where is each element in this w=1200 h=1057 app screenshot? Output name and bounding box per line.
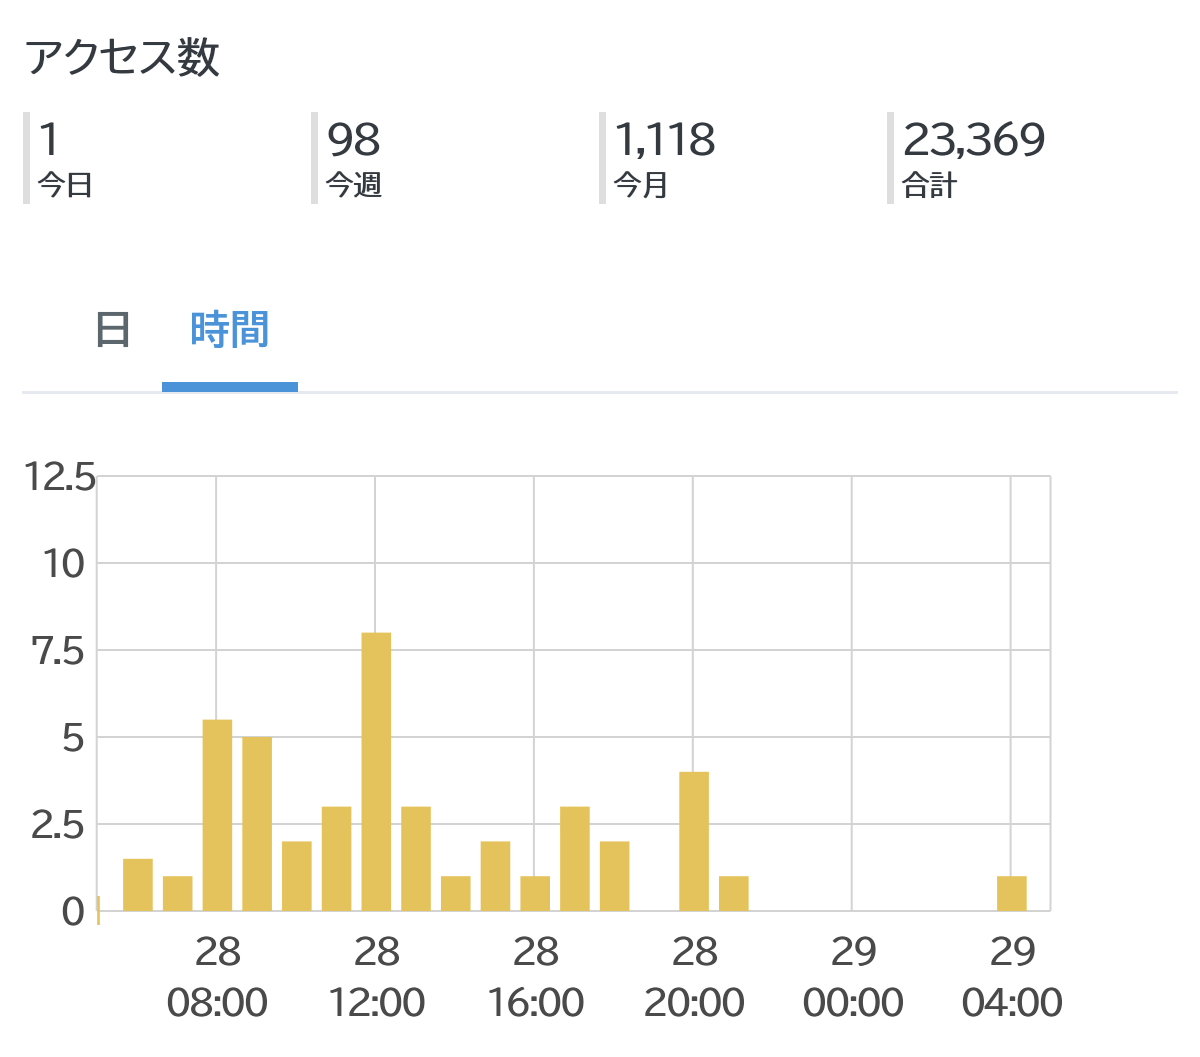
staticText: 12.5 [1,460,96,494]
staticText: 0 [0,895,83,929]
staticText: 23,369 [901,119,1045,159]
button[interactable]: 98 [311,112,593,204]
staticText: 16:00 [487,985,584,1019]
staticText: 28 [511,934,558,968]
staticText: 0 [1,895,84,929]
button[interactable]: 1 [23,112,305,204]
staticText: 00:00 [802,985,904,1019]
staticText: 29 [830,934,877,968]
staticText: 12.5 [0,460,95,494]
button[interactable]: 1,118 [599,112,881,204]
staticText: アクセス数 [25,36,220,78]
staticText: 12:00 [328,985,425,1019]
staticText: 98 [326,119,380,159]
staticText: 04:00 [960,985,1062,1019]
staticText: 2.5 [0,808,83,842]
staticText: 08:00 [166,985,268,1019]
button[interactable]: 23,369 [887,112,1169,204]
staticText: 5 [1,721,84,755]
staticText: アクセス数 [26,36,221,78]
staticText: 98 [325,119,379,159]
staticText: 28 [193,934,240,968]
staticText: 08:00 [165,985,267,1019]
staticText: 28 [512,934,559,968]
staticText: 20:00 [643,985,745,1019]
staticText: 23,369 [902,119,1046,159]
staticText: 20:00 [642,985,744,1019]
staticText: 7.5 [0,634,83,668]
staticText: 今週 [325,170,381,198]
staticText: 1,118 [614,119,715,159]
staticText: 28 [670,934,717,968]
staticText: 日 [93,309,133,349]
staticText: 合計 [902,170,958,198]
staticText: 10 [0,547,83,581]
staticText: 7.5 [1,634,84,668]
staticText: 28 [353,934,400,968]
staticText: 1,118 [613,119,714,159]
staticText: 時間 [190,309,270,349]
staticText: 今日 [37,170,93,198]
staticText: 今週 [326,170,382,198]
staticText: 29 [989,934,1036,968]
staticText: 29 [829,934,876,968]
staticText: 16:00 [486,985,583,1019]
staticText: 5 [0,721,83,755]
button[interactable]: 日 [34,275,192,383]
staticText: 2.5 [1,808,84,842]
staticText: 今日 [38,170,94,198]
staticText: 今月 [613,170,669,198]
staticText: 1 [38,119,60,159]
staticText: 合計 [901,170,957,198]
staticText: 28 [352,934,399,968]
staticText: 28 [194,934,241,968]
staticText: 00:00 [801,985,903,1019]
staticText: 1 [37,119,59,159]
staticText: 28 [671,934,718,968]
button[interactable]: 時間 [162,275,298,383]
staticText: 12:00 [327,985,424,1019]
staticText: 04:00 [961,985,1063,1019]
staticText: 今月 [614,170,670,198]
staticText: 29 [988,934,1035,968]
staticText: 10 [1,547,84,581]
